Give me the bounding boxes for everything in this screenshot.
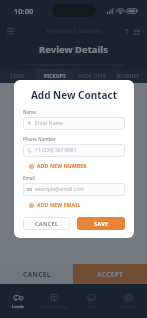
button[interactable]: Enter Name bbox=[23, 117, 125, 130]
staticText: Please review & complete a section befor… bbox=[23, 62, 125, 67]
staticText: Review Details bbox=[39, 43, 108, 56]
button[interactable]: SAVE bbox=[77, 217, 125, 230]
button[interactable]: PICKUPS bbox=[36, 69, 73, 83]
other: Share bbox=[124, 29, 130, 35]
button[interactable]: example@email.com bbox=[23, 183, 125, 196]
staticText: ADD NEW EMAIL bbox=[37, 202, 81, 209]
staticText: JOURNEY bbox=[117, 73, 140, 80]
staticText: Enter Name bbox=[35, 120, 63, 127]
staticText: +1 (234) 567-8901 bbox=[35, 147, 77, 154]
button[interactable]: ADD NEW EMAIL bbox=[23, 202, 125, 209]
staticText: Account bbox=[121, 304, 137, 309]
button[interactable]: Account bbox=[110, 284, 147, 318]
staticText: CANCEL bbox=[35, 220, 59, 227]
staticText: To Portland To Beaverton bbox=[46, 28, 102, 34]
staticText: DROP OFFS bbox=[78, 73, 106, 80]
button[interactable]: CANCEL bbox=[23, 217, 70, 230]
staticText: Add New Contact bbox=[23, 88, 125, 102]
other: Loads bbox=[14, 293, 23, 302]
button[interactable]: Loads bbox=[0, 284, 36, 318]
button[interactable]: +1 (234) 567-8901 bbox=[23, 144, 125, 157]
staticText: CANCEL bbox=[23, 270, 51, 279]
staticText: ACCEPT bbox=[97, 270, 124, 279]
staticText: Email bbox=[23, 175, 35, 181]
button[interactable]: Truck Settings bbox=[36, 284, 73, 318]
staticText: Chat bbox=[87, 304, 96, 309]
staticText: LOAD bbox=[11, 73, 25, 80]
button[interactable]: Chat bbox=[73, 284, 110, 318]
button[interactable]: LOAD bbox=[0, 69, 36, 83]
other: Truck Settings bbox=[50, 293, 59, 302]
staticText: Loads bbox=[12, 304, 24, 309]
button[interactable]: DROP OFFS bbox=[73, 69, 110, 83]
button[interactable]: CANCEL bbox=[0, 264, 73, 284]
other: Account bbox=[124, 293, 133, 302]
staticText: PICKUPS bbox=[44, 73, 66, 80]
staticText: Name bbox=[23, 109, 36, 115]
staticText: Phone Number bbox=[23, 136, 56, 142]
staticText: example@email.com bbox=[35, 186, 84, 193]
staticText: 10:00 bbox=[14, 6, 34, 16]
staticText: ADD NEW NUMBER bbox=[37, 163, 87, 170]
button[interactable]: ACCEPT bbox=[73, 264, 147, 284]
staticText: SAVE bbox=[94, 220, 109, 227]
button[interactable]: ADD NEW NUMBER bbox=[23, 163, 125, 170]
other: Chat bbox=[87, 293, 96, 302]
other: Menu bbox=[7, 28, 14, 35]
button[interactable]: JOURNEY bbox=[110, 69, 147, 83]
other: Home bbox=[133, 28, 140, 35]
staticText: Truck Settings bbox=[41, 304, 68, 309]
